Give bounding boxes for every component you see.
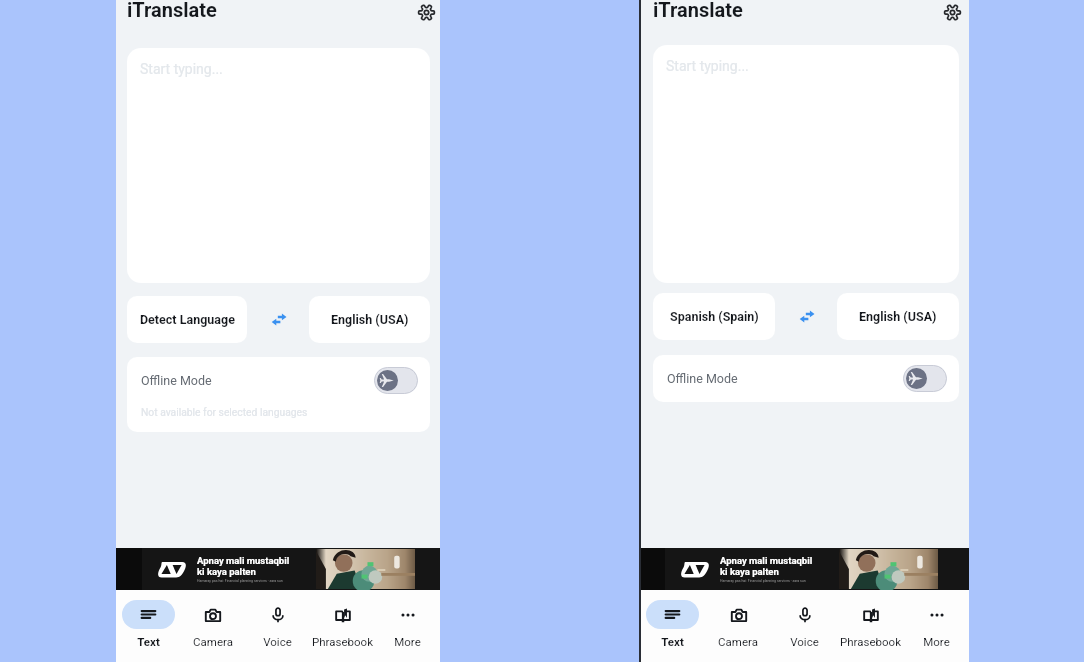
button[interactable]: Text [639,600,705,648]
button[interactable]: More [903,600,969,648]
staticText: Camera [718,635,758,648]
staticText: Text [661,635,684,648]
staticText: Offline Mode [141,373,212,388]
button[interactable]: Spanish (Spain) [653,293,775,340]
staticText: ki kaya palten [197,566,256,577]
button[interactable]: Offline Mode [127,357,430,432]
staticText: English (USA) [859,309,937,324]
button[interactable]: Apnay mali mustaqbil [639,548,969,590]
staticText: Text [137,635,160,648]
staticText: Phrasebook [312,635,373,648]
staticText: Start typing... [140,61,223,77]
staticText: iTranslate [653,0,743,21]
staticText: Not available for selected languages [141,406,308,418]
staticText: Offline Mode [667,371,738,386]
button[interactable]: Text [116,600,180,648]
button[interactable]: Camera [180,600,245,648]
staticText: Phrasebook [840,635,901,648]
staticText: More [394,635,421,648]
staticText: Voice [790,635,819,648]
button[interactable]: Phrasebook [837,600,903,648]
button[interactable]: More [375,600,440,648]
staticText: Camera [193,635,233,648]
staticText: Start typing... [666,58,749,74]
staticText: Apnay mali mustaqbil [197,555,290,566]
staticText: iTranslate [127,0,217,21]
staticText: Apnay mali mustaqbil [720,555,813,566]
staticText: Voice [263,635,292,648]
button[interactable]: Camera [705,600,771,648]
button[interactable]: Offline mode toggle [903,365,947,392]
button[interactable]: Offline mode toggle [374,367,418,394]
staticText: English (USA) [331,312,409,327]
staticText: Hamaray pas hai: Financial planning serv… [720,579,806,583]
button[interactable]: Phrasebook [310,600,375,648]
button[interactable]: Offline Mode [653,355,959,402]
staticText: Detect Language [140,312,235,327]
staticText: More [923,635,950,648]
staticText: Spanish (Spain) [670,309,759,324]
button[interactable]: Detect Language [127,296,247,343]
button[interactable]: Voice [771,600,837,648]
button[interactable]: Settings [938,0,966,26]
button[interactable]: English (USA) [309,296,430,343]
button[interactable]: Apnay mali mustaqbil [116,548,440,590]
button[interactable]: Settings [412,0,440,26]
staticText: ki kaya palten [720,566,779,577]
staticText: Hamaray pas hai: Financial planning serv… [197,579,283,583]
button[interactable]: English (USA) [837,293,959,340]
button[interactable]: Swap languages [247,296,309,343]
button[interactable]: Voice [245,600,310,648]
button[interactable]: Swap languages [775,293,837,340]
